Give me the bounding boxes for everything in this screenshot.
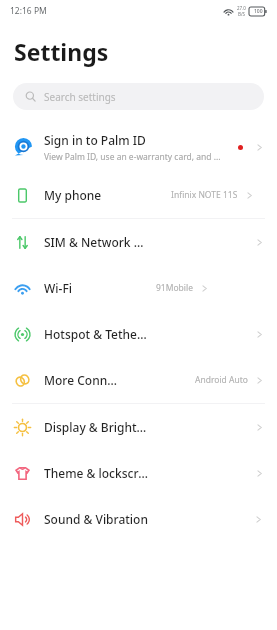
- staticText: Settings: [14, 36, 109, 67]
- other: Theme & lockscreen: [13, 464, 32, 483]
- staticText: B/S: [238, 11, 246, 17]
- other: Hotspot & Tethering: [13, 325, 32, 344]
- button[interactable]: More Connections: [0, 357, 277, 403]
- staticText: Display & Brightness: [44, 419, 149, 435]
- button[interactable]: Display & Brightness: [0, 404, 277, 450]
- staticText: Sign in to Palm ID: [44, 132, 146, 148]
- button[interactable]: SIM & Network settings: [0, 219, 277, 265]
- staticText: Search settings: [44, 90, 116, 104]
- staticText: Theme & lockscreen: [44, 465, 149, 481]
- staticText: Hotspot & Tethering: [44, 326, 149, 342]
- button[interactable]: Theme & lockscreen: [0, 450, 277, 496]
- other: Display & Brightness: [13, 418, 32, 437]
- staticText: My phone: [44, 187, 102, 203]
- other: Wi-Fi: [13, 279, 32, 298]
- staticText: More Connections: [44, 372, 119, 388]
- other: More Connections: [13, 371, 32, 390]
- staticText: 100: [254, 8, 263, 15]
- staticText: 27.0: [237, 5, 246, 11]
- staticText: Android Auto: [195, 374, 248, 386]
- button[interactable]: Hotspot & Tethering: [0, 311, 277, 357]
- other: SIM & Network settings: [13, 233, 32, 252]
- button[interactable]: Sign in to Palm ID: [0, 122, 277, 172]
- other: My phone: [13, 186, 32, 205]
- button[interactable]: Search settings: [13, 83, 264, 110]
- staticText: Infinix NOTE 11S: [171, 189, 238, 201]
- button[interactable]: Wi-Fi: [0, 265, 277, 311]
- staticText: 91Mobile: [156, 282, 193, 294]
- staticText: Sound & Vibration: [44, 511, 148, 527]
- staticText: 12:16 PM: [10, 5, 47, 17]
- button[interactable]: My phone: [0, 172, 277, 218]
- button[interactable]: Sound & Vibration: [0, 496, 277, 542]
- staticText: Wi-Fi: [44, 280, 72, 296]
- staticText: SIM & Network settings: [44, 234, 149, 250]
- other: Sound & Vibration: [13, 510, 32, 529]
- staticText: View Palm ID, use an e-warranty card, an…: [44, 151, 221, 163]
